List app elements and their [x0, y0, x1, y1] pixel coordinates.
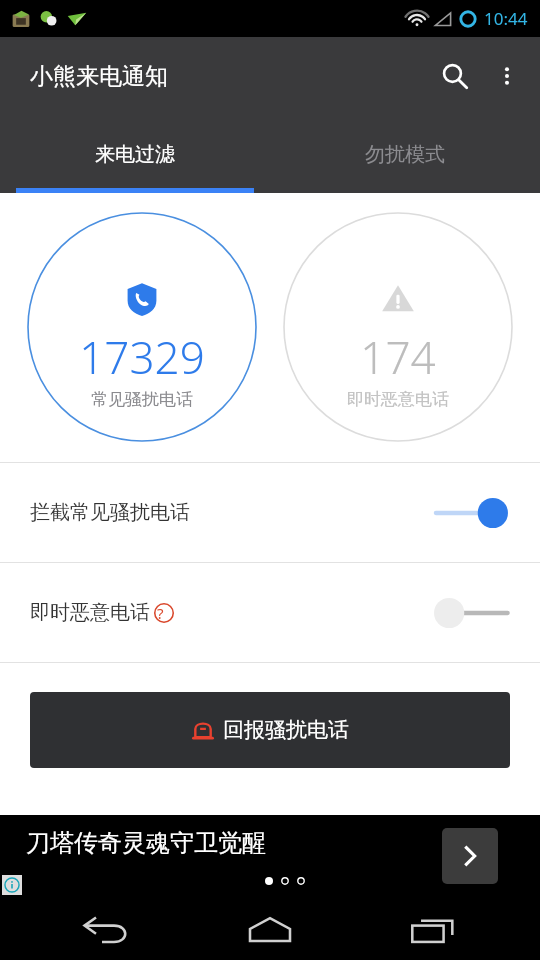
button[interactable]: 174	[283, 212, 513, 442]
button[interactable]: 拦截常见骚扰电话	[0, 463, 540, 562]
staticText: 即时恶意电话	[347, 389, 449, 410]
button[interactable]: Search	[428, 49, 482, 103]
button[interactable]: Recent apps	[378, 897, 488, 960]
button[interactable]: 来电过滤	[0, 115, 270, 193]
staticText: 勿扰模式	[365, 142, 445, 167]
staticText: 小熊来电通知	[30, 62, 168, 91]
staticText: 17329	[79, 327, 205, 387]
button[interactable]: 勿扰模式	[270, 115, 540, 193]
staticText: 10:44	[484, 7, 528, 30]
staticText: 来电过滤	[95, 142, 175, 167]
button[interactable]: Back	[53, 897, 163, 960]
staticText: 常见骚扰电话	[91, 389, 193, 410]
staticText: 回报骚扰电话	[223, 717, 349, 743]
button[interactable]: 即时恶意电话	[0, 563, 540, 662]
button[interactable]: Next ad	[442, 828, 498, 884]
staticText: 174	[360, 327, 436, 387]
button[interactable]: 17329	[27, 212, 257, 442]
button[interactable]: Toggle on	[432, 495, 510, 531]
staticText: ?	[157, 603, 164, 623]
staticText: 刀塔传奇灵魂守卫觉醒	[26, 828, 266, 858]
button[interactable]: Home	[215, 897, 325, 960]
button[interactable]: More options	[482, 51, 532, 101]
staticText: 即时恶意电话	[30, 600, 150, 625]
button[interactable]: Toggle off	[432, 595, 510, 631]
button[interactable]: 回报骚扰电话	[30, 692, 510, 768]
button[interactable]: 刀塔传奇灵魂守卫觉醒	[0, 815, 540, 897]
staticText: 拦截常见骚扰电话	[30, 500, 190, 525]
